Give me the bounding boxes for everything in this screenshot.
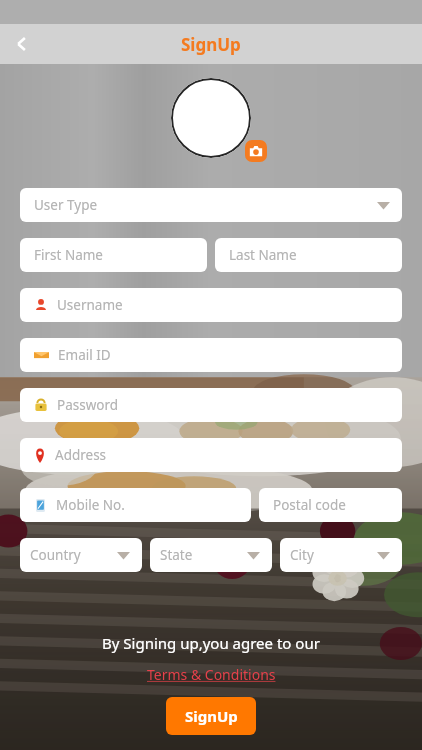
staticText: Address [55,446,107,464]
staticText: Country [30,546,81,564]
button[interactable]: Change photo [245,140,267,162]
button[interactable]: Password [20,388,402,422]
staticText: City [290,546,314,564]
button[interactable]: Country [20,538,142,572]
button[interactable]: Mobile No. [20,488,251,522]
staticText: Postal code [273,496,346,514]
staticText: State [160,546,193,564]
button[interactable]: Address [20,438,402,472]
staticText: Mobile No. [56,496,125,514]
button[interactable]: State [150,538,272,572]
button[interactable]: Last Name [215,238,402,272]
button[interactable]: Postal code [259,488,402,522]
staticText: Password [57,396,119,414]
button[interactable]: SignUp [166,697,256,735]
button[interactable]: Terms & Conditions [143,663,280,686]
button[interactable]: City [280,538,402,572]
button[interactable]: User Type [20,188,402,222]
button[interactable]: First Name [20,238,207,272]
staticText: SignUp [185,706,238,726]
button[interactable]: Username [20,288,402,322]
button[interactable]: Profile photo [171,78,251,158]
staticText: Terms & Conditions [147,665,276,684]
staticText: First Name [34,246,103,264]
staticText: Last Name [229,246,297,264]
staticText: By Signing up,you agree to our [102,633,320,653]
button[interactable]: Email ID [20,338,402,372]
staticText: User Type [34,196,98,214]
staticText: SignUp [181,33,241,56]
staticText: Email ID [58,346,111,364]
staticText: Username [57,296,123,314]
button[interactable]: Back [0,24,44,64]
